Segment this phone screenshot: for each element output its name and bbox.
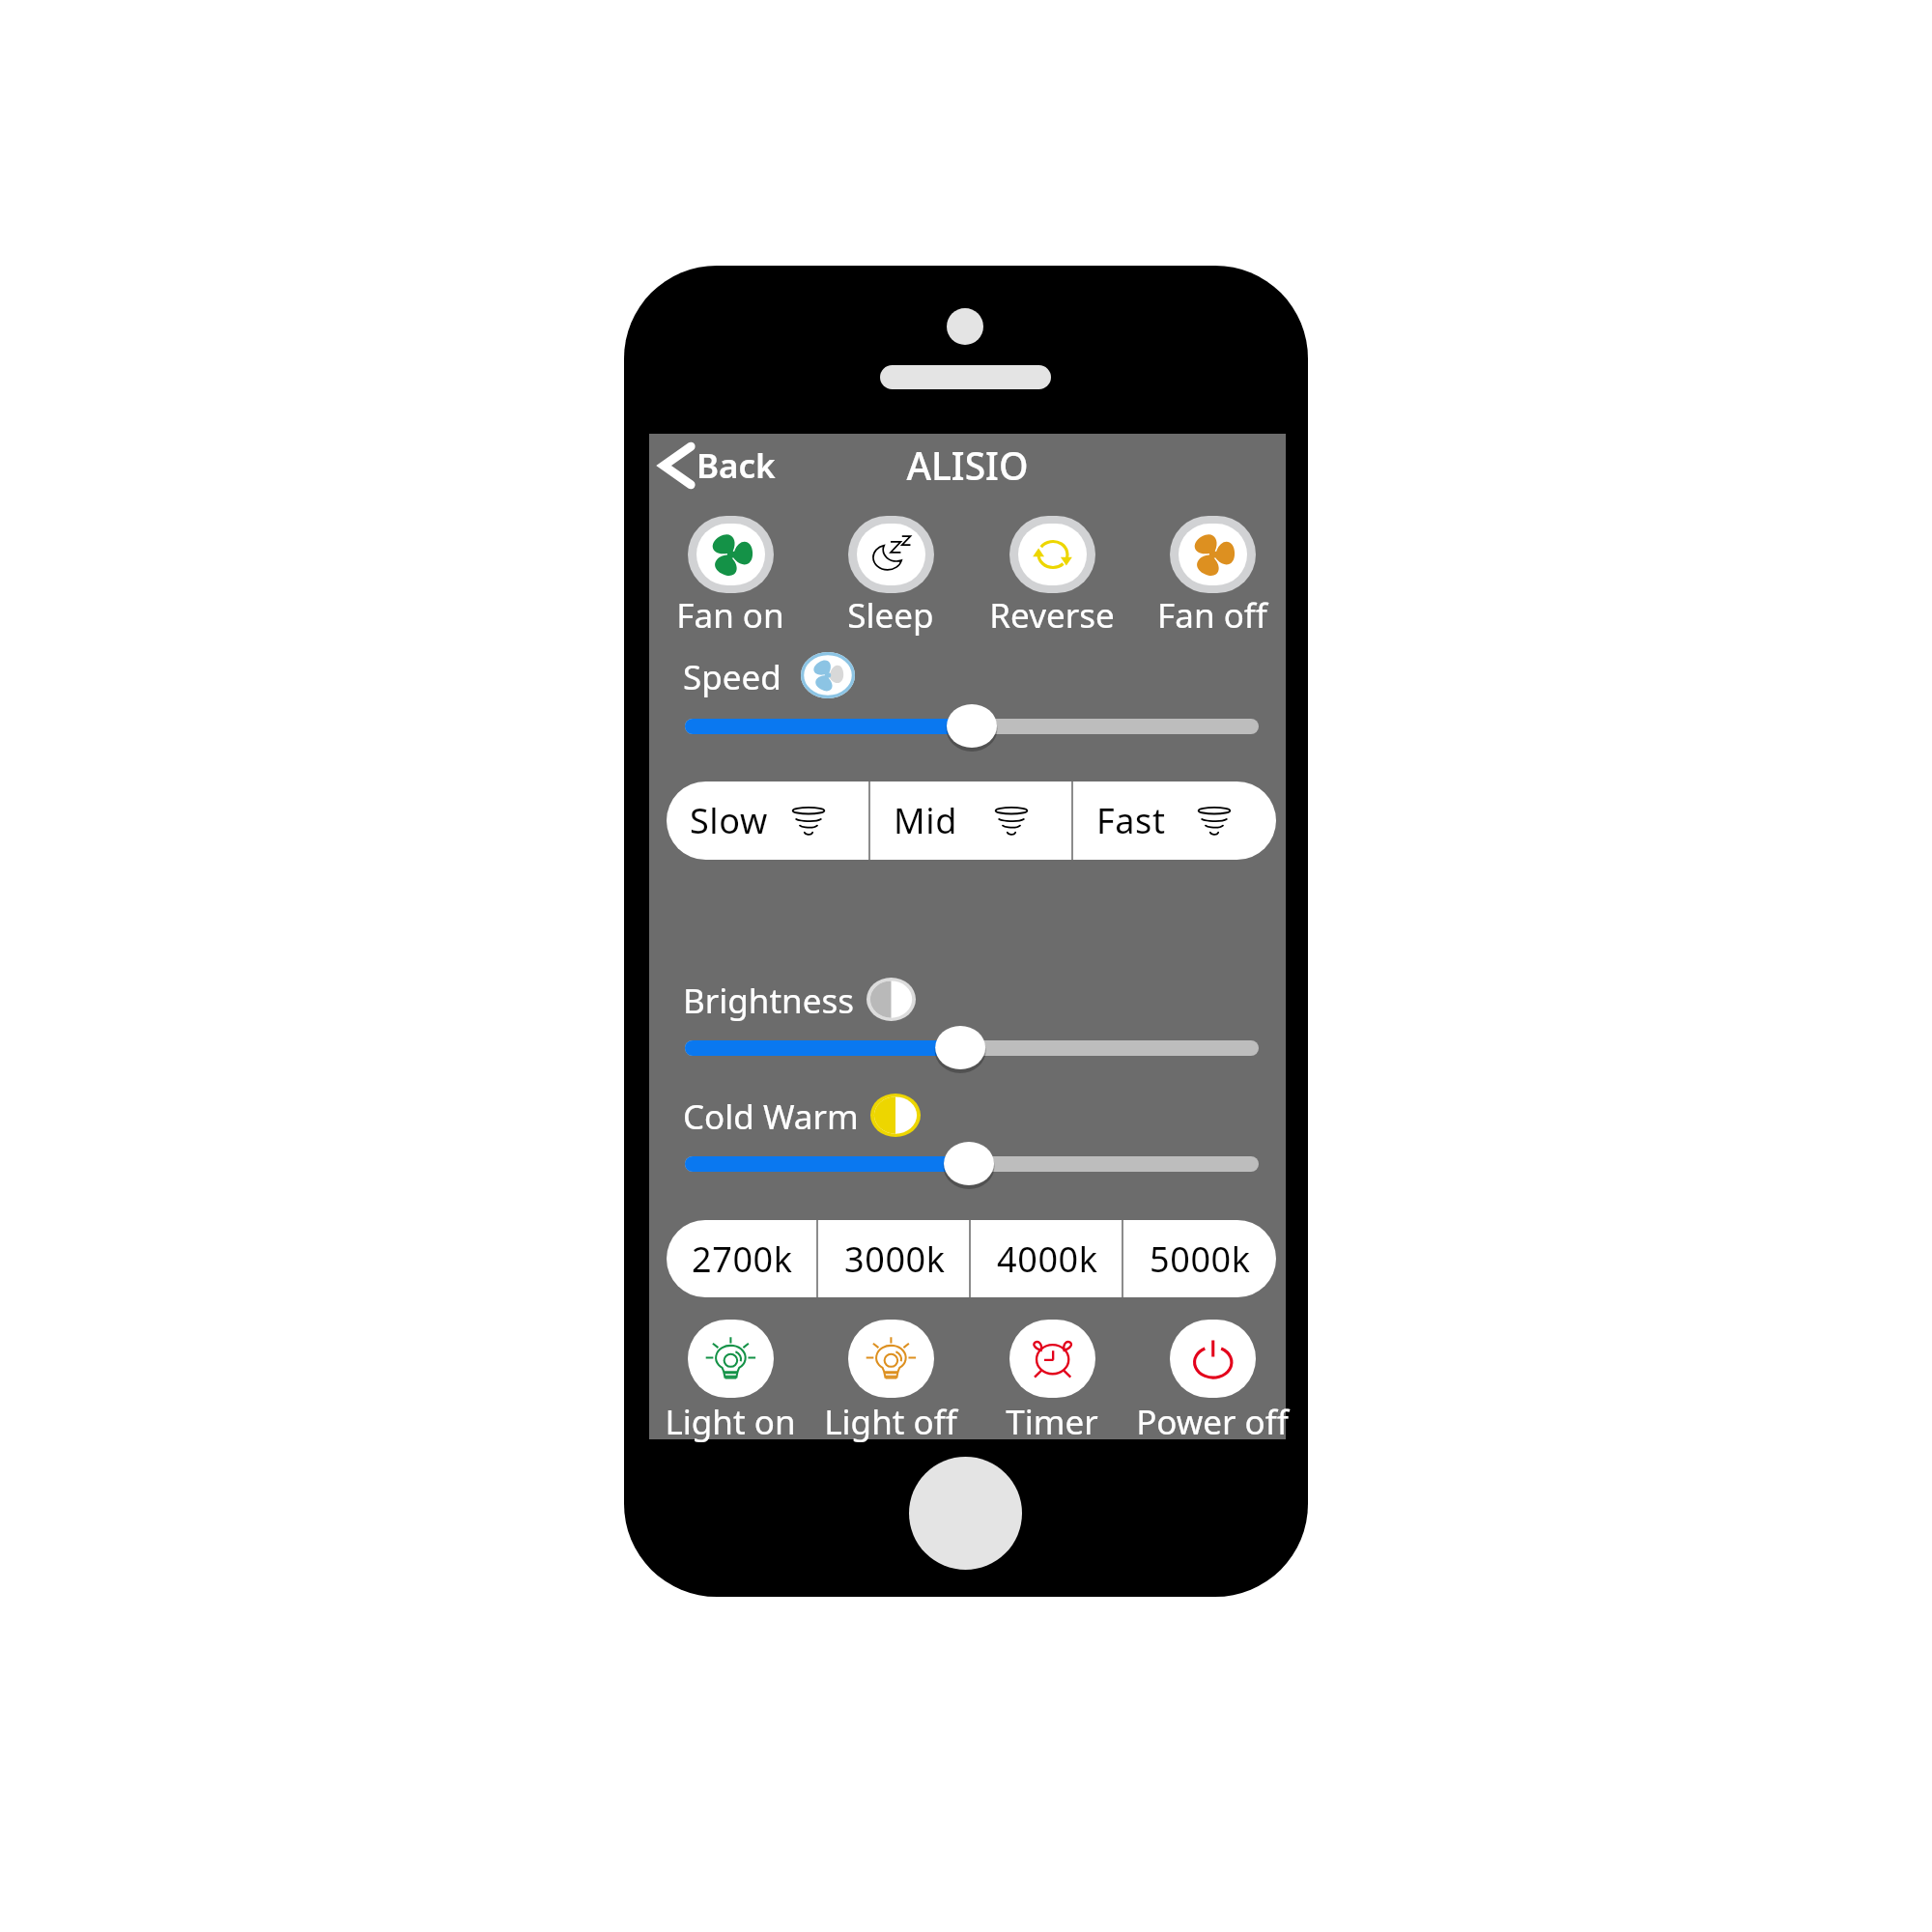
staticText: Mid [894, 797, 957, 844]
staticText: Light off [824, 1399, 957, 1445]
button[interactable]: Fan on [650, 510, 810, 634]
staticText: Back [696, 442, 776, 489]
button[interactable]: Reverse [972, 510, 1132, 634]
staticText: 4000k [997, 1236, 1098, 1283]
staticText: Fan on [676, 592, 784, 639]
button[interactable]: 2700k [667, 1220, 818, 1297]
button[interactable]: Slider [656, 696, 1288, 757]
staticText: 5000k [1150, 1236, 1251, 1283]
button[interactable]: Light off [810, 1314, 971, 1439]
staticText: Timer [1006, 1399, 1098, 1445]
button[interactable]: Slider [656, 1133, 1288, 1195]
staticText: Reverse [989, 592, 1115, 639]
staticText: Speed [683, 654, 781, 700]
staticText: Sleep [847, 592, 934, 639]
button[interactable]: Slow [667, 781, 870, 860]
staticText: Fast [1096, 797, 1166, 844]
staticText: 3000k [844, 1236, 946, 1283]
staticText: 2700k [692, 1236, 793, 1283]
staticText: Cold Warm [683, 1094, 859, 1140]
staticText: Light on [665, 1399, 796, 1445]
button[interactable]: Slider [656, 1017, 1288, 1079]
button[interactable]: 5000k [1123, 1220, 1276, 1297]
staticText: ALISIO [649, 440, 1286, 491]
button[interactable]: Sleep [810, 510, 971, 634]
button[interactable]: 4000k [971, 1220, 1123, 1297]
button[interactable]: Mid [870, 781, 1073, 860]
button[interactable]: Fan off [1132, 510, 1293, 634]
button[interactable]: Power off [1132, 1314, 1293, 1439]
staticText: Fan off [1157, 592, 1267, 639]
button[interactable]: Light on [650, 1314, 810, 1439]
button[interactable]: Fast [1073, 781, 1276, 860]
button[interactable]: 3000k [818, 1220, 971, 1297]
button[interactable]: Timer [972, 1314, 1132, 1439]
button[interactable]: Back [659, 440, 776, 492]
staticText: Slow [690, 797, 768, 844]
staticText: Brightness [683, 978, 854, 1024]
staticText: Power off [1136, 1399, 1289, 1445]
